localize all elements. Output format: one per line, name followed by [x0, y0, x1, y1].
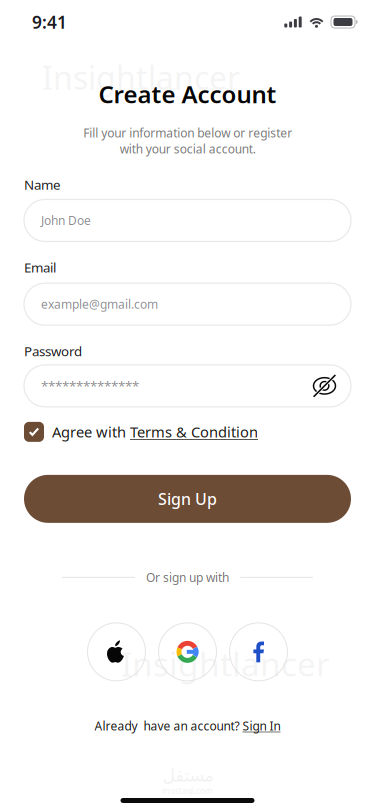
staticText: Password: [24, 342, 82, 360]
staticText: Fill your information below or register …: [83, 125, 292, 157]
button[interactable]: Sign Up: [24, 475, 351, 523]
staticText: 9:41: [32, 10, 67, 33]
button[interactable]: Already have an account? Sign In: [94, 718, 280, 734]
staticText: mostaql.com: [162, 785, 213, 796]
button[interactable]: Sign up with Facebook: [229, 623, 287, 681]
staticText: Insightlancer: [42, 56, 240, 98]
staticText: Agree with Terms & Condition: [52, 422, 258, 442]
staticText: مستقل: [162, 766, 213, 785]
button[interactable]: Agree with Terms & Condition: [0, 422, 375, 442]
staticText: John Doe: [41, 212, 91, 228]
staticText: example@gmail.com: [41, 296, 158, 312]
staticText: Create Account: [98, 78, 276, 110]
staticText: Sign Up: [158, 488, 217, 509]
staticText: Already have an account? Sign In: [94, 718, 280, 734]
staticText: **************: [41, 377, 139, 395]
staticText: Or sign up with: [146, 569, 229, 585]
staticText: Insightlancer: [121, 641, 330, 686]
staticText: Email: [24, 258, 56, 276]
staticText: Name: [24, 176, 61, 193]
button[interactable]: Sign up with Apple: [87, 623, 145, 681]
button[interactable]: Sign up with Google: [158, 623, 216, 681]
